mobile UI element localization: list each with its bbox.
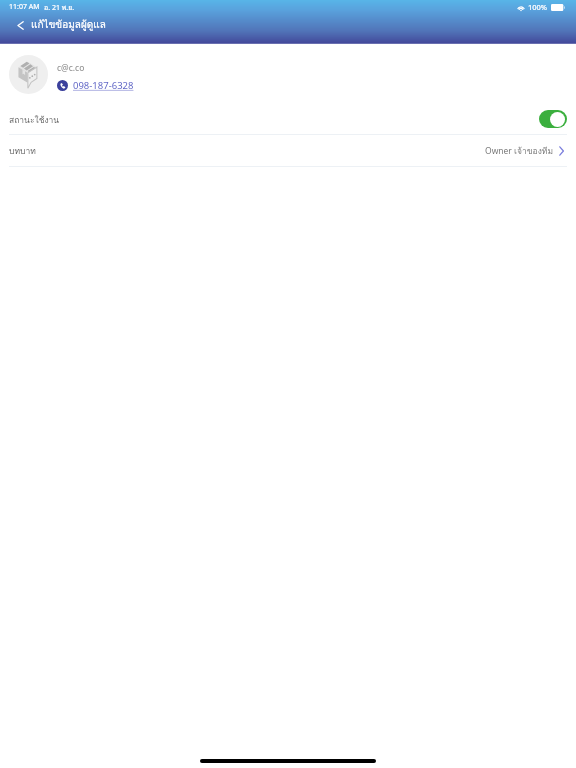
button[interactable]: Call 098-187-6328	[57, 79, 134, 92]
button[interactable]: Active toggle	[539, 110, 567, 128]
staticText: 11:07 AM	[9, 2, 40, 12]
staticText: 100%	[528, 2, 548, 12]
button[interactable]: Back	[11, 17, 29, 33]
staticText: 098-187-6328	[73, 79, 134, 92]
staticText: บทบาท	[9, 144, 36, 158]
button[interactable]: สถานะใช้งาน	[0, 100, 576, 134]
staticText: แก้ไขข้อมูลผู้ดูแล	[31, 17, 106, 33]
staticText: Owner เจ้าของทีม	[485, 144, 554, 158]
staticText: สถานะใช้งาน	[9, 113, 60, 127]
button[interactable]: บทบาท	[0, 135, 576, 166]
staticText: อ. 21 พ.ย.	[44, 2, 75, 13]
staticText: c@c.co	[57, 62, 85, 74]
